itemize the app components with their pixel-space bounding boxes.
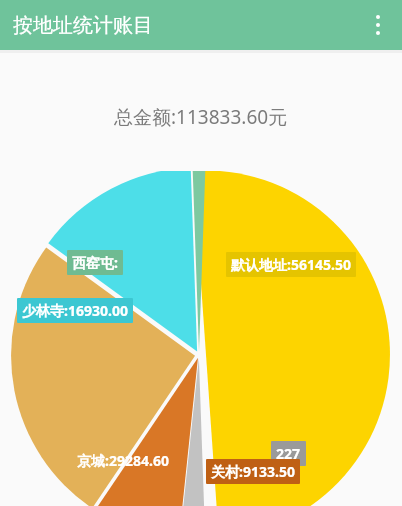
button[interactable]: 227 [271, 441, 306, 466]
staticText: 关村:9133.50 [211, 462, 295, 481]
staticText: 227 [276, 444, 301, 463]
button[interactable]: 少林寺:16930.00 [17, 298, 133, 323]
button[interactable]: More options [354, 1, 402, 49]
button[interactable]: 关村:9133.50 [206, 459, 300, 484]
staticText: 京城:29284.60 [77, 451, 169, 470]
button[interactable]: 西窑屯: [67, 250, 123, 275]
staticText: 少林寺:16930.00 [22, 301, 128, 320]
button[interactable]: 京城:29284.60 [72, 448, 174, 473]
staticText: 默认地址:56145.50 [231, 255, 351, 274]
staticText: 总金额:113833.60元 [114, 104, 288, 130]
staticText: 按地址统计账目 [13, 13, 153, 38]
button[interactable]: 默认地址:56145.50 [226, 252, 356, 277]
staticText: 西窑屯: [72, 253, 118, 272]
